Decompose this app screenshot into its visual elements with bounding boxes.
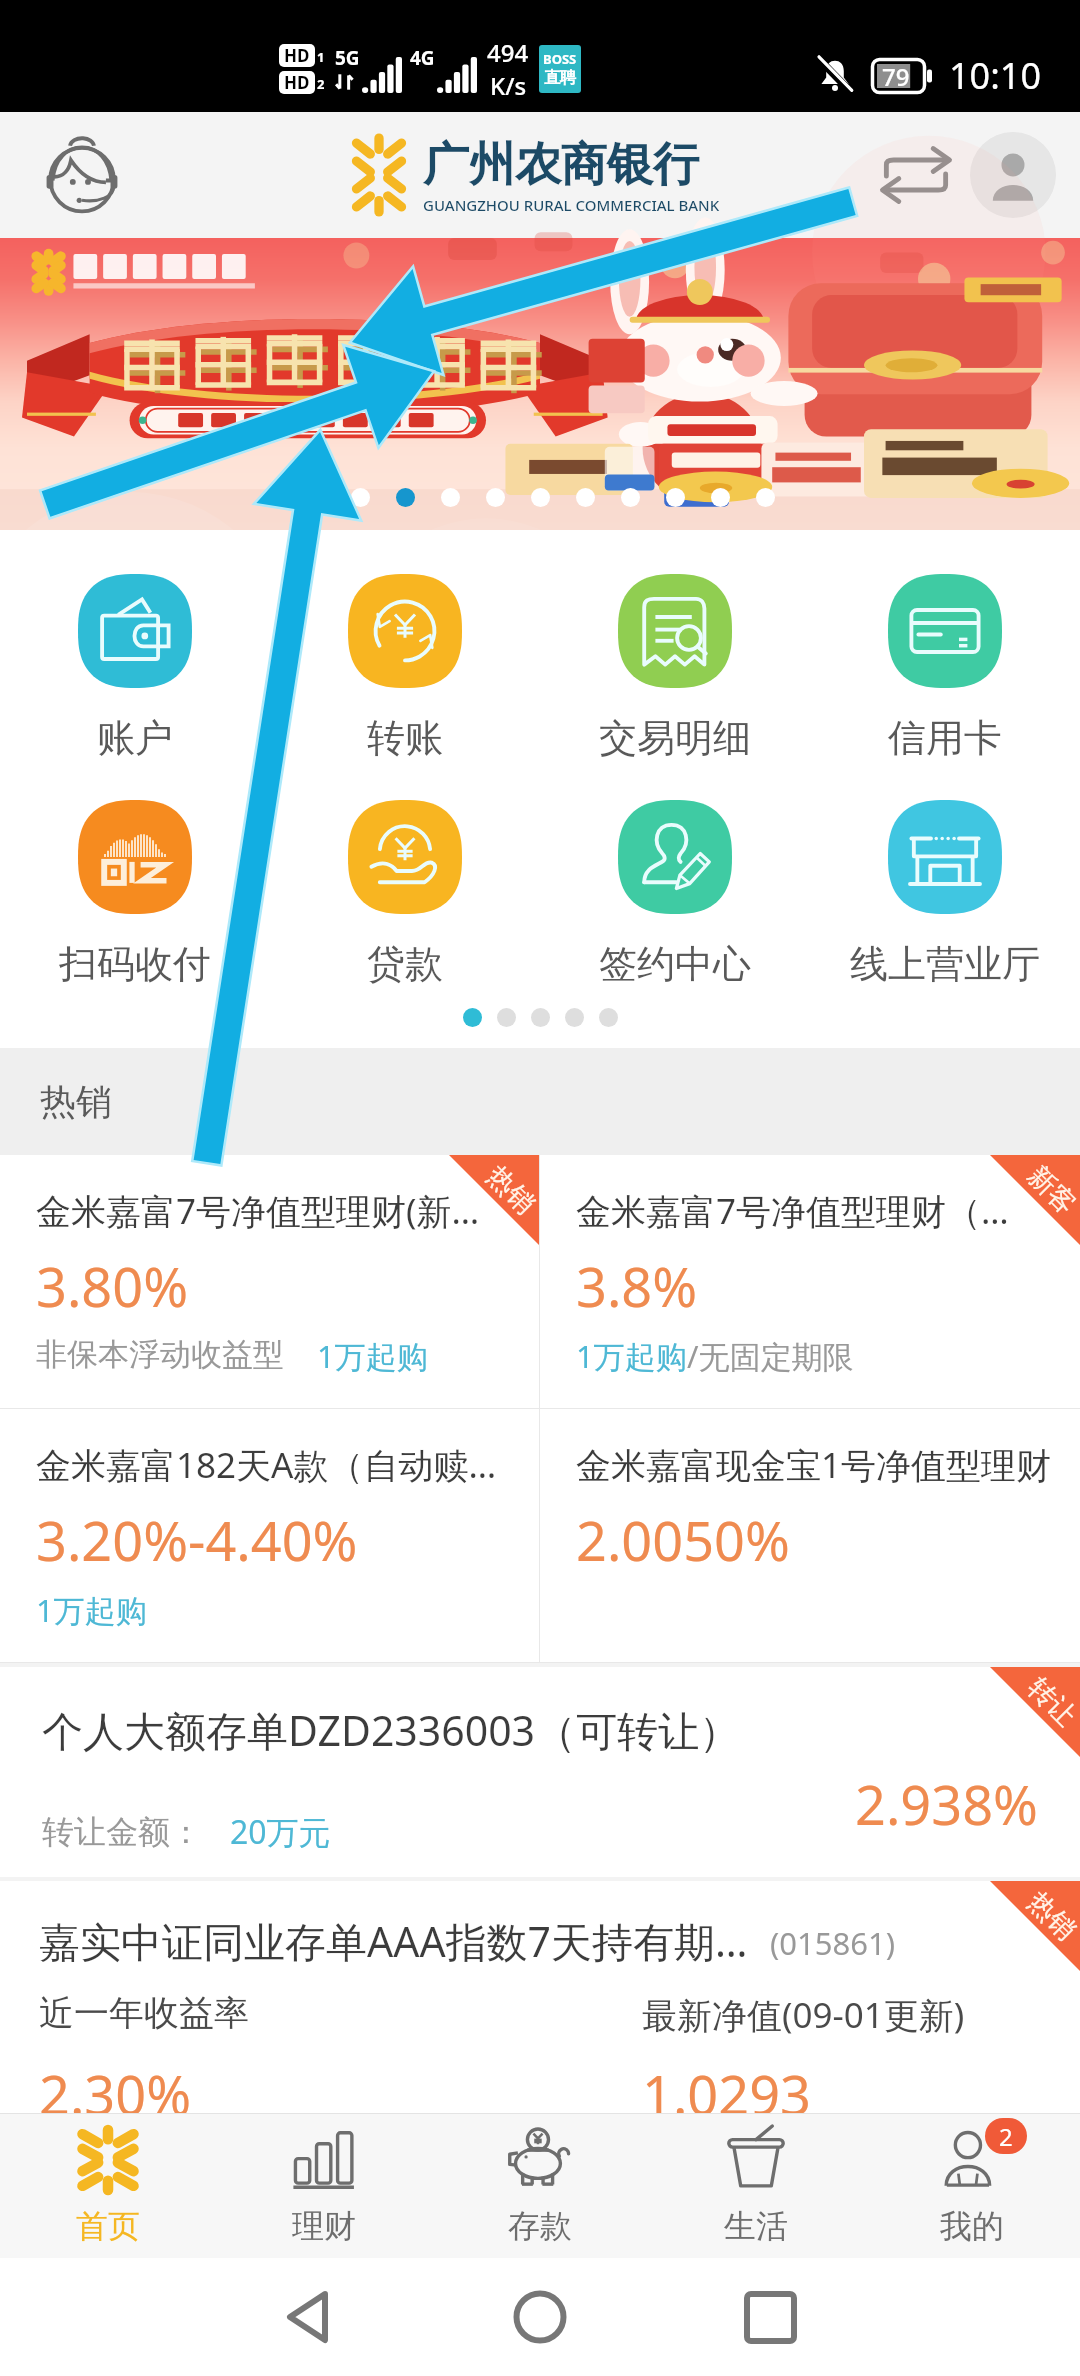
staticText: 首页 [76,2206,140,2246]
staticText: 79 [882,60,910,93]
button[interactable]: 金米嘉富7号净值型理财(新… [0,1155,539,1408]
staticText: 1.0293 [642,2057,811,2117]
button[interactable]: 个人大额存单DZD2336003（可转让） [0,1667,1080,1877]
button[interactable]: 我的账户 [970,132,1056,218]
button[interactable]: 金米嘉富现金宝1号净值型理财 [540,1409,1080,1662]
staticText: 交易明细 [599,714,751,762]
staticText: 金米嘉富182天A款（自动赎… [36,1441,497,1489]
staticText: 20万元 [230,1810,331,1854]
button[interactable]: 在线客服 [30,123,134,227]
staticText: 10:10 [949,51,1042,100]
staticText: 2 [317,75,325,93]
button[interactable]: 嘉实中证同业存单AAA指数7天持有期… [0,1881,1080,2117]
button[interactable]: 金米嘉富7号净值型理财（… [540,1155,1080,1408]
staticText: 转让 [1021,1671,1080,1733]
staticText: 签约中心 [599,940,751,988]
staticText: 3.20%-4.40% [36,1503,358,1577]
button[interactable]: 存款 [432,2114,648,2258]
staticText: 账户 [97,714,173,762]
button[interactable]: 最近任务 [725,2272,815,2362]
staticText: 嘉实中证同业存单AAA指数7天持有期… [39,1913,748,1969]
button[interactable]: 账户 [0,574,270,762]
staticText: HD [284,71,310,94]
staticText: 1 [317,48,325,66]
button[interactable]: 交易明细 [540,574,810,762]
button[interactable]: 签约中心 [540,800,810,988]
staticText: 2.938% [855,1767,1038,1841]
staticText: 信用卡 [888,714,1002,762]
staticText: 广州农商银行 [423,136,699,194]
staticText: 热销 [40,1079,112,1124]
staticText: K/s [490,69,527,102]
staticText: 个人大额存单DZD2336003（可转让） [42,1702,741,1758]
staticText: 转让金额： [42,1812,202,1852]
button[interactable]: 生活 [648,2114,864,2258]
staticText: 热销 [480,1159,542,1221]
staticText: 3.8% [576,1249,698,1323]
staticText: 2.0050% [576,1503,790,1577]
staticText: (015861) [770,1922,895,1964]
staticText: GUANGZHOU RURAL COMMERCIAL BANK [423,195,720,215]
staticText: 贷款 [367,940,443,988]
staticText: 新客 [1021,1159,1080,1221]
button[interactable] [0,238,1080,530]
button[interactable]: 转账 [270,574,540,762]
staticText: 4G [410,45,435,71]
button[interactable]: 返回 [265,2272,355,2362]
staticText: 存款 [508,2206,572,2246]
button[interactable]: 扫码收付 [0,800,270,988]
staticText: 非保本浮动收益型 [36,1335,284,1374]
button[interactable]: 贷款 [270,800,540,988]
button[interactable]: 2 [864,2114,1080,2258]
staticText: 转账 [367,714,443,762]
staticText: 线上营业厅 [850,940,1040,988]
staticText: 5G [335,45,360,71]
staticText: 热销 [1021,1885,1080,1947]
staticText: 金米嘉富现金宝1号净值型理财 [576,1441,1052,1489]
button[interactable]: 信用卡 [810,574,1080,762]
staticText: 3.80% [36,1249,189,1323]
button[interactable]: 线上营业厅 [810,800,1080,988]
staticText: 直聘 [544,68,576,88]
staticText: 近一年收益率 [39,1991,249,2035]
staticText: 1万起购 [36,1589,147,1631]
staticText: 金米嘉富7号净值型理财（… [576,1187,1009,1235]
staticText: 2 [999,2120,1013,2153]
button[interactable]: 切换账户 [868,127,964,223]
staticText: 1万起购 [576,1335,687,1377]
button[interactable]: 金米嘉富182天A款（自动赎… [0,1409,539,1662]
staticText: 我的 [940,2206,1004,2246]
staticText: 金米嘉富7号净值型理财(新… [36,1187,480,1235]
staticText: 扫码收付 [59,940,211,988]
staticText: 2.30% [39,2057,192,2117]
staticText: 生活 [724,2206,788,2246]
button[interactable]: 理财 [216,2114,432,2258]
staticText: 理财 [292,2206,356,2246]
staticText: BOSS [543,50,577,68]
button[interactable]: 首页 [0,2114,216,2258]
staticText: /无固定期限 [687,1335,854,1377]
staticText: HD [284,44,310,67]
staticText: 最新净值(09-01更新) [642,1991,965,2039]
staticText: 1万起购 [317,1335,428,1377]
staticText: 494 [487,36,529,69]
button[interactable]: 主页 [495,2272,585,2362]
